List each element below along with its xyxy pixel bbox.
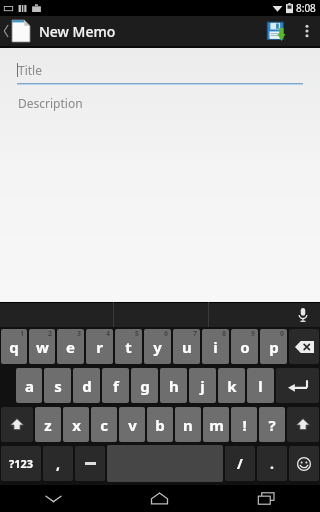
staticText: m bbox=[209, 415, 224, 435]
staticText: h bbox=[169, 376, 179, 396]
button[interactable]: o bbox=[231, 329, 258, 364]
button[interactable]: Shift bbox=[1, 407, 33, 442]
staticText: s bbox=[54, 376, 62, 396]
staticText: g bbox=[140, 376, 150, 396]
staticText: ? bbox=[268, 415, 276, 435]
staticText: n bbox=[183, 415, 193, 435]
staticText: 0 bbox=[280, 329, 285, 339]
staticText: 3 bbox=[77, 329, 82, 339]
staticText: / bbox=[237, 454, 243, 473]
staticText: j bbox=[200, 376, 205, 396]
button[interactable]: l bbox=[247, 368, 274, 403]
button[interactable]: h bbox=[160, 368, 187, 403]
staticText: e bbox=[66, 337, 75, 357]
staticText: d bbox=[82, 376, 92, 396]
staticText: Title bbox=[18, 62, 42, 78]
button[interactable]: d bbox=[73, 368, 100, 403]
staticText: 2 bbox=[48, 329, 53, 339]
button[interactable]: ? bbox=[259, 407, 285, 442]
button[interactable]: Symbols bbox=[1, 446, 41, 481]
staticText: w bbox=[36, 337, 49, 357]
button[interactable]: Delete bbox=[289, 329, 319, 364]
staticText: 5 bbox=[135, 329, 140, 339]
staticText: x bbox=[72, 415, 81, 435]
button[interactable]: k bbox=[218, 368, 245, 403]
staticText: y bbox=[153, 337, 162, 357]
staticText: . bbox=[270, 454, 274, 473]
button[interactable]: Shift bbox=[287, 407, 319, 442]
button[interactable]: n bbox=[175, 407, 201, 442]
button[interactable]: More options bbox=[294, 16, 320, 46]
staticText: o bbox=[240, 337, 250, 357]
staticText: 1 bbox=[20, 329, 25, 339]
button[interactable]: Save bbox=[260, 16, 294, 46]
button[interactable]: v bbox=[119, 407, 145, 442]
staticText: New Memo bbox=[39, 22, 116, 41]
button[interactable]: f bbox=[102, 368, 129, 403]
button[interactable]: p bbox=[260, 329, 287, 364]
staticText: i bbox=[213, 337, 218, 357]
staticText: a bbox=[25, 376, 34, 396]
button[interactable]: b bbox=[147, 407, 173, 442]
button[interactable]: Emoji bbox=[289, 446, 319, 481]
button[interactable]: i bbox=[202, 329, 229, 364]
button[interactable]: Recent apps bbox=[213, 485, 320, 512]
button[interactable]: x bbox=[63, 407, 89, 442]
staticText: 9 bbox=[251, 329, 256, 339]
button[interactable]: a bbox=[16, 368, 42, 403]
button[interactable]: Settings bbox=[75, 446, 105, 481]
staticText: 8:08 bbox=[296, 1, 316, 15]
button[interactable]: q bbox=[1, 329, 27, 364]
button[interactable]: m bbox=[203, 407, 229, 442]
button[interactable]: Slash bbox=[225, 446, 255, 481]
button[interactable]: Home bbox=[106, 485, 213, 512]
staticText: v bbox=[128, 415, 137, 435]
button[interactable]: e bbox=[57, 329, 84, 364]
staticText: f bbox=[113, 376, 119, 396]
button[interactable]: Voice input bbox=[294, 306, 312, 324]
button[interactable]: c bbox=[91, 407, 117, 442]
staticText: k bbox=[227, 376, 237, 396]
staticText: u bbox=[182, 337, 192, 357]
staticText: b bbox=[155, 415, 165, 435]
button[interactable]: Comma bbox=[43, 446, 73, 481]
button[interactable]: Up bbox=[0, 16, 34, 46]
button[interactable]: Enter bbox=[276, 368, 319, 403]
button[interactable]: Hide keyboard bbox=[0, 485, 106, 512]
staticText: p bbox=[269, 337, 279, 357]
staticText: 7 bbox=[193, 329, 198, 339]
button[interactable]: z bbox=[35, 407, 61, 442]
button[interactable]: y bbox=[144, 329, 171, 364]
button[interactable]: u bbox=[173, 329, 200, 364]
button[interactable]: Period bbox=[257, 446, 287, 481]
staticText: 6 bbox=[164, 329, 169, 339]
staticText: Description bbox=[18, 95, 83, 111]
staticText: z bbox=[44, 415, 52, 435]
button[interactable]: j bbox=[189, 368, 216, 403]
staticText: ?123 bbox=[9, 456, 34, 471]
staticText: 8 bbox=[222, 329, 227, 339]
staticText: , bbox=[56, 454, 60, 473]
button[interactable]: s bbox=[44, 368, 71, 403]
button[interactable]: w bbox=[29, 329, 55, 364]
staticText: ! bbox=[242, 415, 247, 435]
staticText: l bbox=[258, 376, 263, 396]
staticText: t bbox=[125, 337, 132, 357]
staticText: r bbox=[96, 337, 103, 357]
button[interactable]: g bbox=[131, 368, 158, 403]
button[interactable]: Description bbox=[18, 95, 302, 111]
staticText: c bbox=[100, 415, 108, 435]
staticText: q bbox=[9, 337, 19, 357]
button[interactable]: r bbox=[86, 329, 113, 364]
staticText: 4 bbox=[106, 329, 111, 339]
button[interactable]: ! bbox=[231, 407, 257, 442]
button[interactable]: Title bbox=[17, 62, 303, 85]
button[interactable]: t bbox=[115, 329, 142, 364]
